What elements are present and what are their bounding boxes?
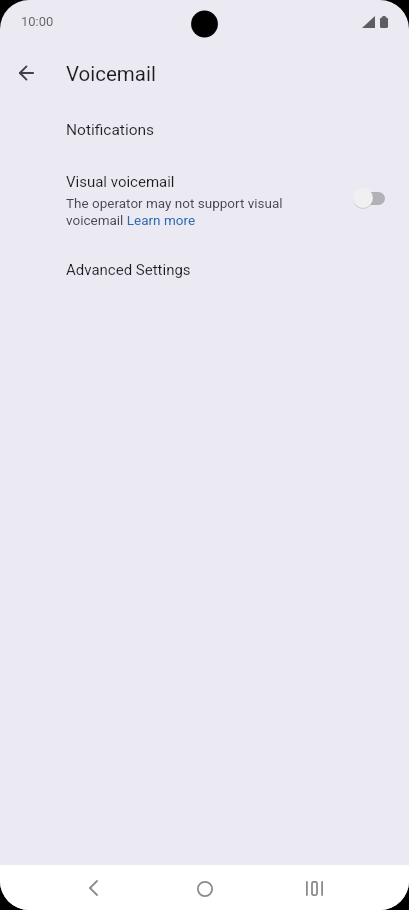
staticText: Advanced Settings [66,261,191,279]
button[interactable]: Visual voicemail [0,160,409,236]
button[interactable]: Visual voicemail [351,184,393,212]
staticText: Visual voicemail [66,173,175,191]
button[interactable]: Back [73,868,113,908]
staticText: Notifications [66,121,155,139]
button[interactable]: Recent apps [294,868,334,908]
button[interactable]: Back [6,53,46,93]
staticText: 10:00 [21,14,54,29]
staticText: The operator may not support visual voic… [66,195,292,229]
button[interactable]: Home [185,869,225,909]
staticText: Voicemail [66,62,156,86]
button[interactable]: Advanced Settings [0,242,409,294]
